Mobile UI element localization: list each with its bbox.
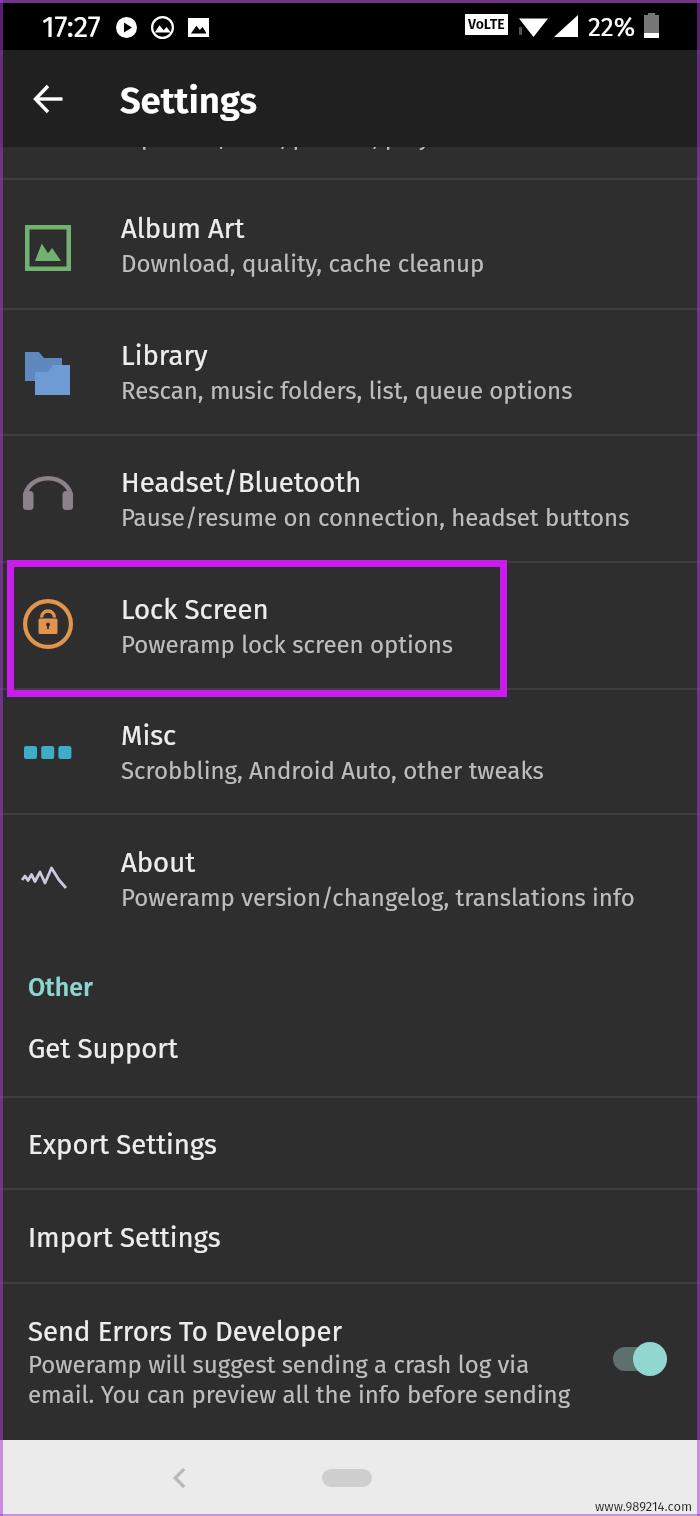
- staticText: VoLTE: [468, 16, 505, 33]
- staticText: Pause/resume on connection, headset butt…: [121, 504, 630, 533]
- staticText: Rescan, music folders, list, queue optio…: [121, 377, 573, 406]
- button[interactable]: Send errors to developer toggle: [605, 1337, 677, 1381]
- staticText: Settings: [120, 79, 257, 123]
- staticText: Send Errors To Developer: [28, 1315, 343, 1348]
- button[interactable]: Get Support: [0, 1008, 700, 1096]
- button[interactable]: Export Settings: [0, 1098, 700, 1188]
- button[interactable]: Headset/Bluetooth: [0, 436, 700, 561]
- button[interactable]: Library: [0, 310, 700, 434]
- button[interactable]: Album Art: [0, 180, 700, 308]
- button[interactable]: Lock Screen: [0, 563, 700, 688]
- staticText: Get Support: [28, 1032, 178, 1065]
- button[interactable]: Home: [312, 1440, 382, 1516]
- staticText: Album Art: [121, 212, 245, 245]
- staticText: Misc: [121, 719, 177, 752]
- button[interactable]: Back: [154, 1440, 206, 1516]
- staticText: Poweramp version/changelog, translations…: [121, 884, 635, 913]
- button[interactable]: About: [0, 815, 700, 938]
- staticText: Download, quality, cache cleanup: [121, 250, 485, 279]
- button[interactable]: Send Errors To Developer: [0, 1284, 700, 1439]
- staticText: Scrobbling, Android Auto, other tweaks: [121, 757, 544, 786]
- staticText: Export Settings: [28, 1128, 217, 1161]
- button[interactable]: Import Settings: [0, 1190, 700, 1282]
- staticText: About: [121, 846, 196, 879]
- staticText: Other: [28, 973, 93, 1003]
- staticText: 22%: [588, 12, 636, 43]
- staticText: Equalizer, tone, presets, playback: [121, 147, 482, 152]
- staticText: Poweramp lock screen options: [121, 631, 454, 660]
- staticText: Import Settings: [28, 1221, 221, 1254]
- button[interactable]: Back: [12, 50, 84, 147]
- staticText: Headset/Bluetooth: [121, 466, 362, 499]
- staticText: 17:27: [42, 10, 101, 45]
- staticText: Library: [121, 339, 208, 372]
- button[interactable]: Misc: [0, 690, 700, 813]
- staticText: Poweramp will suggest sending a crash lo…: [28, 1351, 571, 1409]
- staticText: Lock Screen: [121, 593, 269, 626]
- staticText: www.989214.com: [595, 1499, 693, 1515]
